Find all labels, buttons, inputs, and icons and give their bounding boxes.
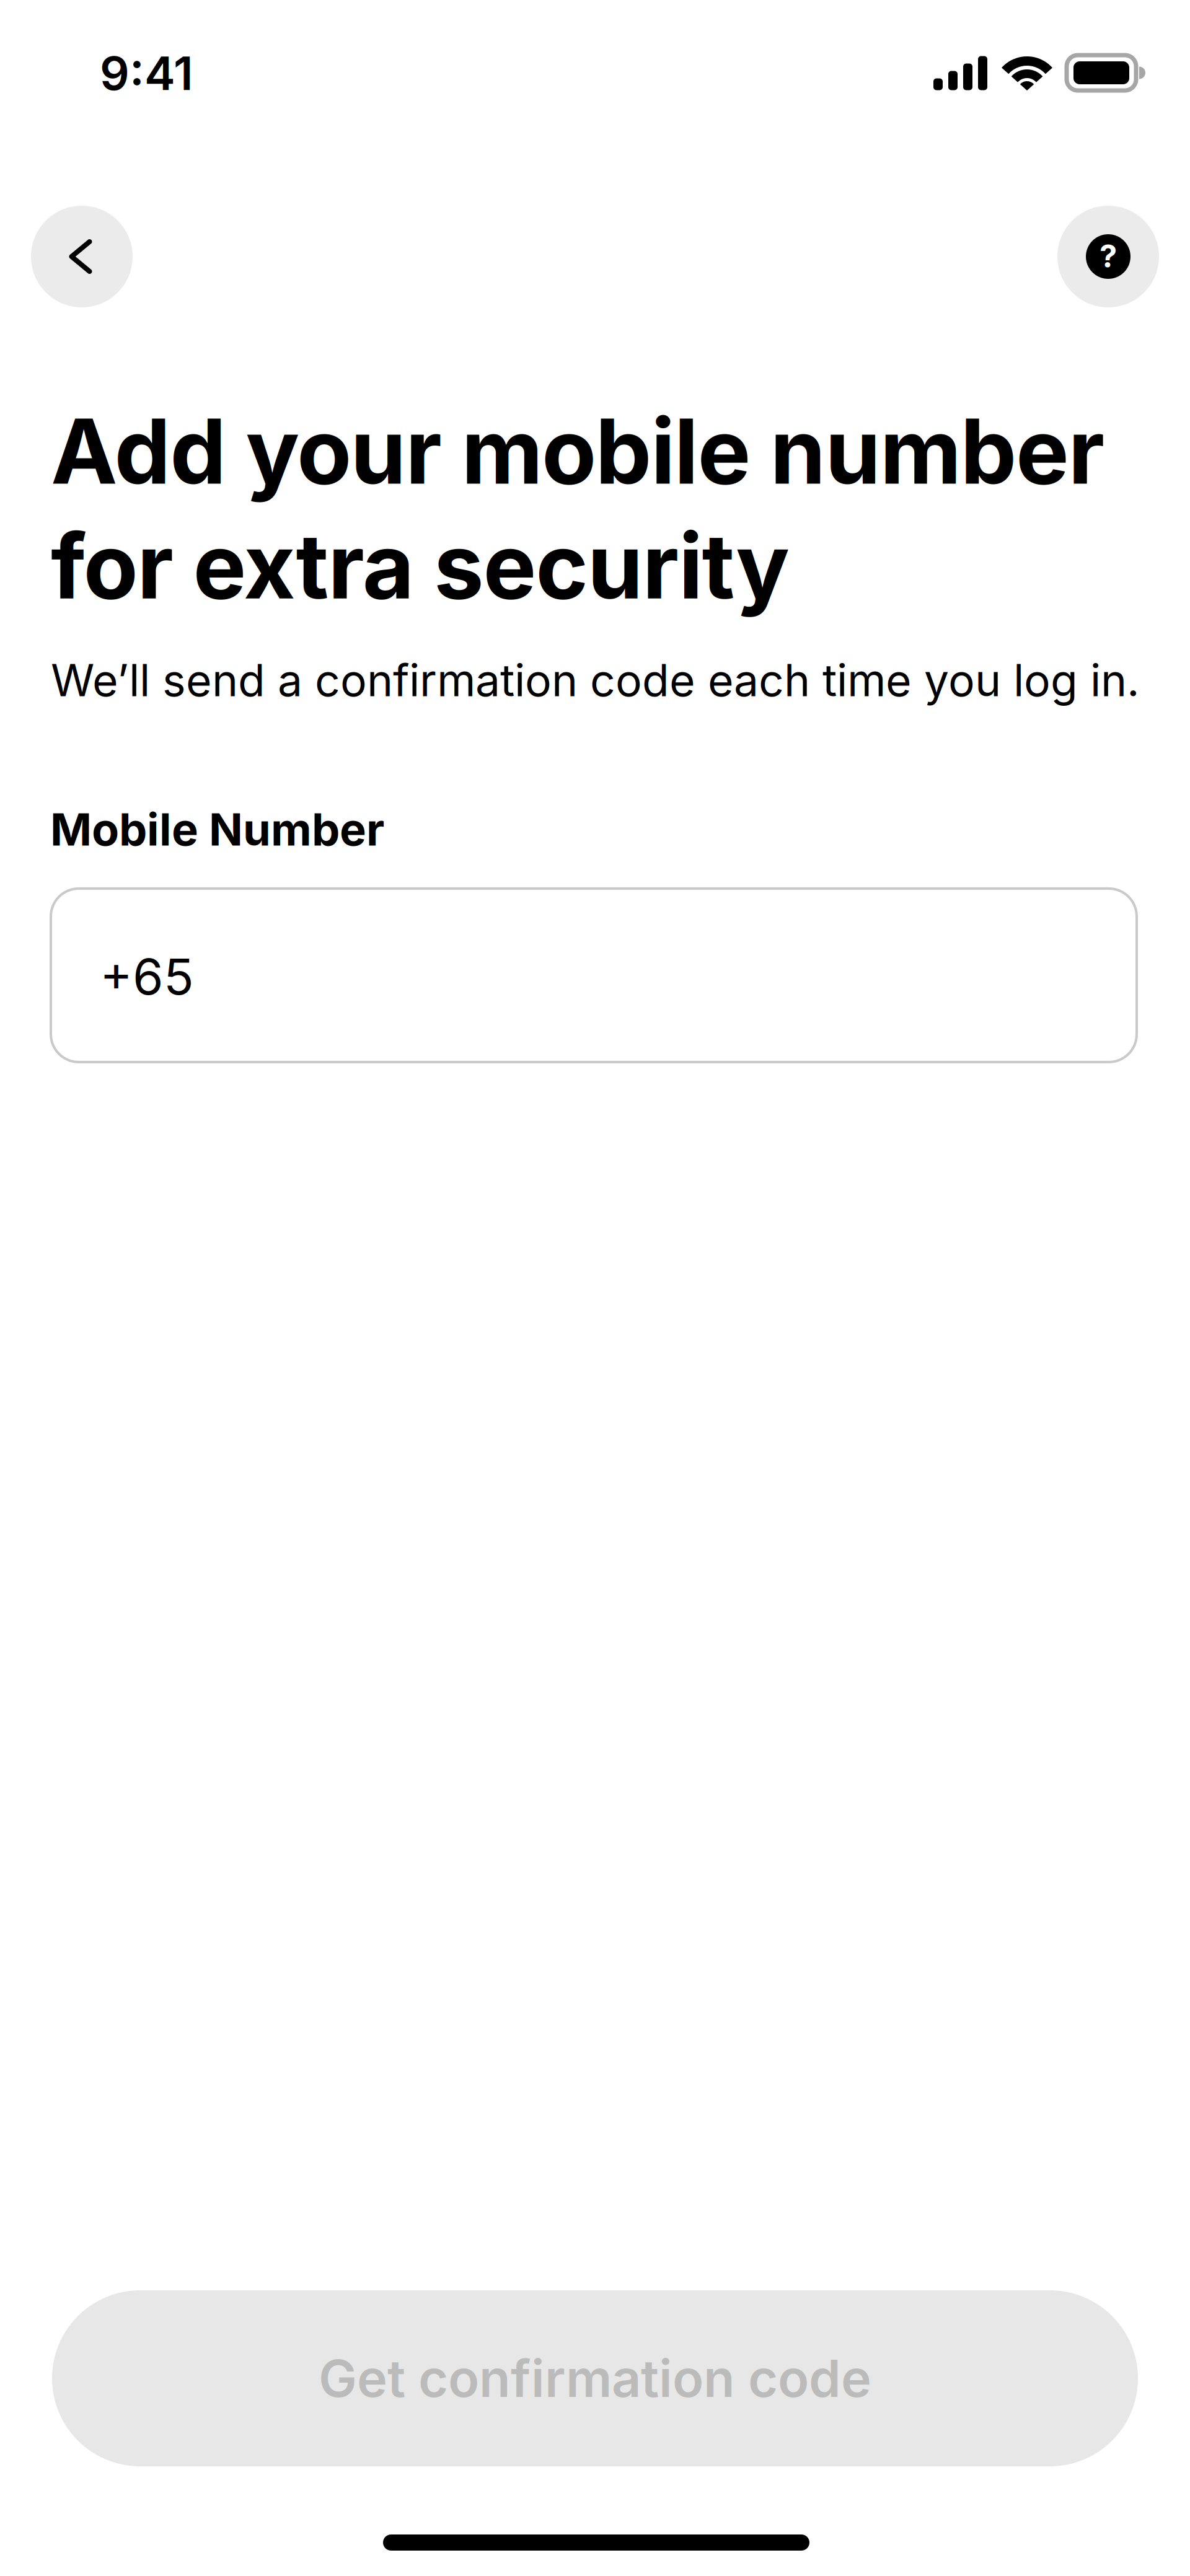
- staticText: ?: [1100, 237, 1117, 275]
- staticText: +65: [100, 947, 194, 1007]
- staticText: Add your mobile number for extra securit…: [51, 397, 1105, 620]
- button[interactable]: Mobile Number: [51, 889, 1137, 1062]
- button[interactable]: Back: [31, 206, 133, 307]
- staticText: We’ll send a confirmation code each time…: [51, 653, 1140, 707]
- staticText: Get confirmation code: [319, 2347, 871, 2409]
- staticText: 9:41: [100, 45, 193, 101]
- button[interactable]: Get confirmation code: [52, 2290, 1138, 2466]
- staticText: Mobile Number: [50, 802, 384, 856]
- button[interactable]: Help: [1057, 206, 1159, 307]
